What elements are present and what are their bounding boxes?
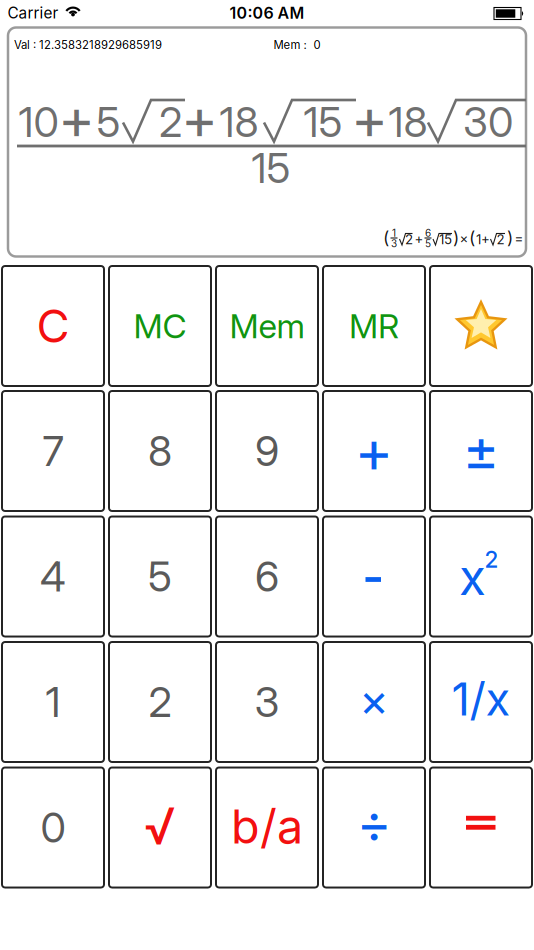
staticText: + <box>354 415 393 486</box>
staticText: ( <box>383 227 389 248</box>
staticText: 18 <box>388 97 427 147</box>
staticText: Val : 12.3583218929685919 <box>14 38 162 52</box>
staticText: 18 <box>219 97 258 147</box>
staticText: ( <box>469 227 475 248</box>
staticText: C <box>36 299 69 353</box>
staticText: 3 <box>254 677 279 727</box>
staticText: 5 <box>96 97 120 147</box>
staticText: 9 <box>255 426 279 476</box>
staticText: 15 <box>251 143 290 193</box>
staticText: 6 <box>255 551 279 601</box>
staticText: + <box>58 85 95 152</box>
staticText: 6 <box>425 227 431 239</box>
staticText: 4 <box>40 551 66 601</box>
staticText: + <box>414 230 423 246</box>
staticText: Mem <box>229 306 304 346</box>
staticText: 15 <box>439 231 452 247</box>
staticText: 10 <box>18 97 58 147</box>
staticText: × <box>359 672 389 727</box>
staticText: √ <box>144 795 176 857</box>
staticText: 0 <box>40 802 65 852</box>
staticText: MR <box>349 306 399 346</box>
staticText: 2 <box>496 231 504 247</box>
staticText: 30 <box>463 97 513 147</box>
staticText: MC <box>133 306 186 346</box>
staticText: ÷ <box>356 791 391 855</box>
staticText: = <box>514 230 523 246</box>
staticText: 2 <box>159 97 182 147</box>
staticText: 0 <box>313 38 320 52</box>
staticText: 1+ <box>476 231 490 247</box>
staticText: b/a <box>231 798 303 855</box>
staticText: ± <box>462 416 499 484</box>
staticText: × <box>459 230 468 246</box>
staticText: + <box>351 85 388 152</box>
staticText: 7 <box>42 426 63 476</box>
staticText: Mem : <box>273 38 306 52</box>
staticText: 3 <box>391 237 397 250</box>
staticText: 1 <box>392 227 396 239</box>
staticText: ) <box>507 227 513 248</box>
staticText: 5 <box>425 237 431 250</box>
staticText: 5 <box>148 551 172 601</box>
staticText: 8 <box>148 426 172 476</box>
staticText: 2 <box>484 546 498 573</box>
staticText: 1/x <box>451 672 510 726</box>
staticText: x <box>459 547 486 607</box>
staticText: + <box>181 85 218 152</box>
staticText: 10:06 AM <box>229 3 304 23</box>
staticText: ) <box>453 227 459 248</box>
staticText: 2 <box>148 677 171 727</box>
staticText: 1 <box>45 677 60 727</box>
staticText: 2 <box>405 231 413 247</box>
staticText: Carrier <box>7 4 58 22</box>
staticText: 15 <box>303 97 342 147</box>
